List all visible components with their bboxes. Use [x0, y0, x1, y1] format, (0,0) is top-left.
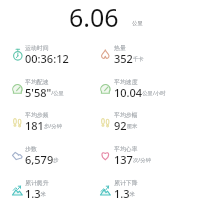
- staticText: 平均配速: [25, 78, 49, 85]
- staticText: 运动时间: [25, 44, 49, 51]
- button[interactable]: 平均配速: [12, 77, 100, 99]
- staticText: 352千卡: [114, 51, 144, 66]
- staticText: 公里: [132, 20, 143, 27]
- staticText: 累计下降: [114, 179, 138, 186]
- button[interactable]: 平均速度: [100, 77, 188, 99]
- staticText: 5'58"/公里: [25, 85, 64, 100]
- staticText: 6,579步: [25, 152, 59, 167]
- button[interactable]: 运动时间: [12, 43, 100, 65]
- staticText: 平均步频: [25, 111, 49, 118]
- button[interactable]: 累计下降: [100, 178, 188, 200]
- button[interactable]: 平均心率: [100, 144, 188, 166]
- staticText: 00:36:12: [25, 51, 69, 66]
- staticText: 累计爬升: [25, 179, 49, 186]
- staticText: 1.3米: [25, 186, 46, 200]
- staticText: 热量: [114, 44, 126, 51]
- button[interactable]: 平均步幅: [100, 110, 188, 132]
- staticText: 137次/分钟: [114, 152, 152, 167]
- staticText: 6.06: [69, 0, 119, 34]
- staticText: 10.04公里/小时: [114, 85, 166, 100]
- button[interactable]: 累计爬升: [12, 178, 100, 200]
- staticText: 平均速度: [114, 78, 138, 85]
- staticText: 平均心率: [114, 145, 138, 152]
- button[interactable]: 热量: [100, 43, 188, 65]
- button[interactable]: 平均步频: [12, 110, 100, 132]
- staticText: 1.3米: [114, 186, 135, 200]
- staticText: 92厘米: [114, 118, 138, 133]
- staticText: 步数: [25, 145, 37, 152]
- staticText: 181步/分钟: [25, 118, 63, 133]
- button[interactable]: 步数: [12, 144, 100, 166]
- staticText: 平均步幅: [114, 111, 138, 118]
